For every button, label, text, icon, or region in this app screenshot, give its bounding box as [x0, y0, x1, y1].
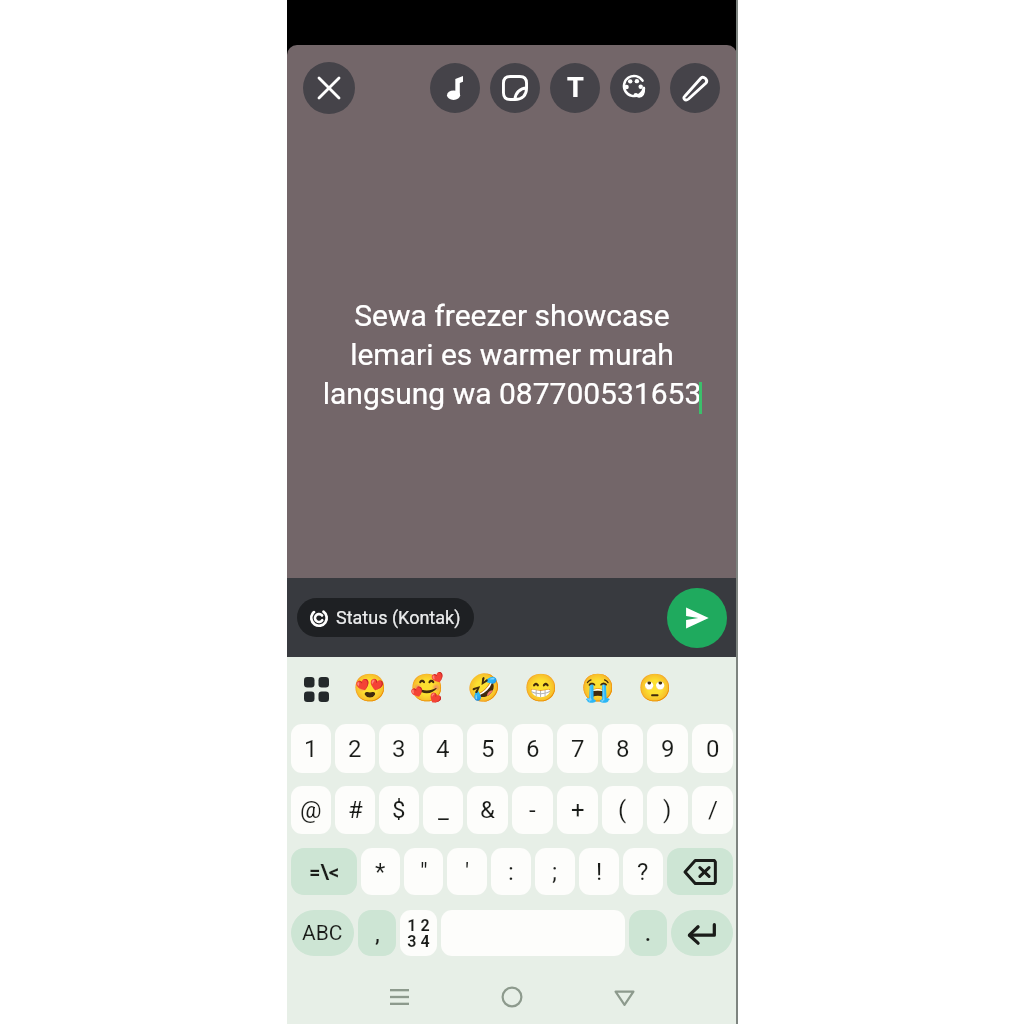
- button[interactable]: 🥰: [405, 666, 449, 710]
- staticText: -: [529, 796, 536, 824]
- staticText: /: [708, 796, 718, 824]
- staticText: ': [465, 858, 470, 886]
- button[interactable]: Draw color: [610, 63, 660, 113]
- button[interactable]: $: [379, 786, 419, 834]
- staticText: T: [567, 72, 584, 104]
- button[interactable]: ): [647, 786, 688, 834]
- staticText: !: [596, 858, 603, 886]
- staticText: _: [438, 796, 449, 824]
- staticText: $: [392, 796, 406, 824]
- staticText: =\<: [309, 860, 340, 883]
- button[interactable]: ": [404, 848, 443, 895]
- button[interactable]: *: [361, 848, 400, 895]
- staticText: ,: [375, 922, 380, 945]
- button[interactable]: Back: [602, 975, 646, 1019]
- button[interactable]: 5: [467, 724, 508, 773]
- staticText: 🤣: [467, 672, 501, 704]
- button[interactable]: 6: [512, 724, 553, 773]
- staticText: 2: [348, 735, 362, 763]
- button[interactable]: ': [447, 848, 487, 895]
- button[interactable]: .: [629, 910, 667, 956]
- staticText: Sewa freezer showcase lemari es warmer m…: [287, 298, 737, 412]
- button[interactable]: _: [423, 786, 463, 834]
- button[interactable]: 7: [557, 724, 598, 773]
- button[interactable]: Close: [303, 62, 355, 114]
- staticText: ;: [552, 858, 558, 886]
- staticText: 😭: [581, 672, 615, 704]
- button[interactable]: 3: [379, 724, 419, 773]
- staticText: 🙄: [638, 672, 672, 704]
- staticText: (: [618, 796, 627, 824]
- staticText: ?: [637, 858, 649, 886]
- button[interactable]: 1: [291, 724, 331, 773]
- other: Numbers: [407, 916, 430, 951]
- staticText: Status (Kontak): [336, 607, 461, 628]
- staticText: :: [508, 858, 514, 886]
- button[interactable]: 2: [335, 724, 375, 773]
- button[interactable]: ?: [623, 848, 663, 895]
- staticText: +: [571, 796, 585, 824]
- button[interactable]: ;: [535, 848, 575, 895]
- staticText: 😁: [524, 672, 558, 704]
- button[interactable]: :: [491, 848, 531, 895]
- button[interactable]: Send: [667, 588, 727, 648]
- button[interactable]: +: [557, 786, 598, 834]
- staticText: ": [420, 858, 428, 886]
- staticText: *: [375, 858, 386, 886]
- button[interactable]: Recent apps: [377, 975, 421, 1019]
- staticText: 5: [481, 735, 495, 763]
- staticText: 🥰: [410, 672, 444, 704]
- button[interactable]: Music: [430, 63, 480, 113]
- button[interactable]: (: [602, 786, 643, 834]
- staticText: 6: [526, 735, 540, 763]
- button[interactable]: Text: [550, 63, 600, 113]
- staticText: 9: [661, 735, 675, 763]
- button[interactable]: Enter: [671, 910, 733, 956]
- button[interactable]: 😍: [348, 666, 392, 710]
- button[interactable]: 😭: [576, 666, 620, 710]
- staticText: 4: [436, 735, 450, 763]
- button[interactable]: 😁: [519, 666, 563, 710]
- staticText: .: [645, 922, 651, 945]
- button[interactable]: -: [512, 786, 553, 834]
- button[interactable]: Sticker: [490, 63, 540, 113]
- button[interactable]: 🙄: [633, 666, 677, 710]
- button[interactable]: 4: [423, 724, 463, 773]
- button[interactable]: =\<: [291, 848, 357, 895]
- button[interactable]: ,: [358, 910, 396, 956]
- button[interactable]: Pen: [670, 63, 720, 113]
- button[interactable]: Status (Kontak): [297, 598, 474, 637]
- staticText: 1 2 3 4: [407, 916, 430, 951]
- staticText: #: [348, 796, 363, 824]
- button[interactable]: 🤣: [462, 666, 506, 710]
- button[interactable]: Emoji categories: [294, 667, 338, 711]
- staticText: ): [663, 796, 672, 824]
- staticText: 7: [571, 735, 585, 763]
- button[interactable]: !: [579, 848, 619, 895]
- staticText: 😍: [353, 672, 387, 704]
- staticText: 3: [392, 735, 406, 763]
- button[interactable]: &: [467, 786, 508, 834]
- button[interactable]: Home: [490, 975, 534, 1019]
- button[interactable]: 9: [647, 724, 688, 773]
- button[interactable]: ABC: [291, 910, 354, 956]
- staticText: &: [480, 796, 495, 824]
- staticText: 8: [616, 735, 630, 763]
- staticText: 1: [304, 735, 318, 763]
- staticText: @: [300, 796, 322, 824]
- button[interactable]: 8: [602, 724, 643, 773]
- other: Enter: [688, 923, 716, 944]
- other: Backspace: [684, 859, 717, 885]
- staticText: 0: [706, 735, 720, 763]
- button[interactable]: @: [291, 786, 331, 834]
- button[interactable]: /: [692, 786, 733, 834]
- button[interactable]: Backspace: [667, 848, 733, 895]
- button[interactable]: Numbers: [400, 910, 437, 956]
- button[interactable]: 0: [692, 724, 733, 773]
- button[interactable]: #: [335, 786, 375, 834]
- staticText: ABC: [302, 921, 343, 946]
